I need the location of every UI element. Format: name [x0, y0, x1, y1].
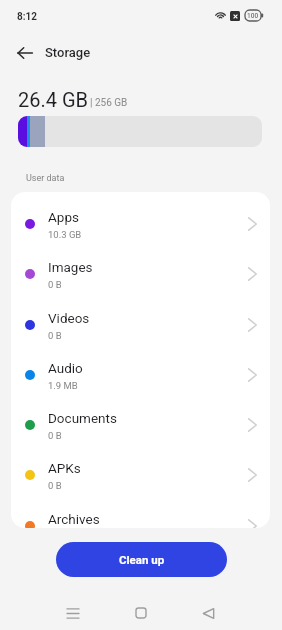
staticText: Audio: [48, 360, 83, 376]
staticText: APKs: [48, 460, 81, 476]
button[interactable]: Videos: [11, 300, 270, 350]
button[interactable]: Documents: [11, 400, 270, 450]
staticText: 0 B: [48, 480, 62, 491]
staticText: 0 B: [48, 430, 62, 441]
button[interactable]: Audio: [11, 350, 270, 400]
staticText: 8:12: [17, 11, 38, 23]
button[interactable]: Archives: [11, 501, 270, 528]
button[interactable]: Home: [127, 599, 155, 627]
staticText: Apps: [48, 209, 79, 225]
staticText: Storage: [45, 45, 91, 60]
staticText: 100: [247, 12, 259, 20]
staticText: 0 B: [48, 279, 62, 290]
button[interactable]: Images: [11, 249, 270, 299]
staticText: 10.3 GB: [48, 229, 82, 240]
button[interactable]: Recent apps: [59, 599, 87, 627]
staticText: Videos: [48, 310, 90, 326]
staticText: User data: [26, 173, 65, 184]
staticText: 0 B: [48, 330, 62, 341]
button[interactable]: Apps: [11, 199, 270, 249]
staticText: 1.9 MB: [48, 380, 78, 391]
staticText: Clean up: [119, 553, 165, 566]
button[interactable]: Clean up: [56, 542, 227, 577]
staticText: Images: [48, 259, 93, 275]
button[interactable]: APKs: [11, 450, 270, 500]
staticText: Archives: [48, 511, 100, 527]
staticText: 26.4 GB: [18, 88, 89, 111]
staticText: Documents: [48, 410, 117, 426]
staticText: | 256 GB: [90, 97, 128, 109]
button[interactable]: Back: [12, 40, 38, 66]
button[interactable]: Back: [194, 599, 222, 627]
